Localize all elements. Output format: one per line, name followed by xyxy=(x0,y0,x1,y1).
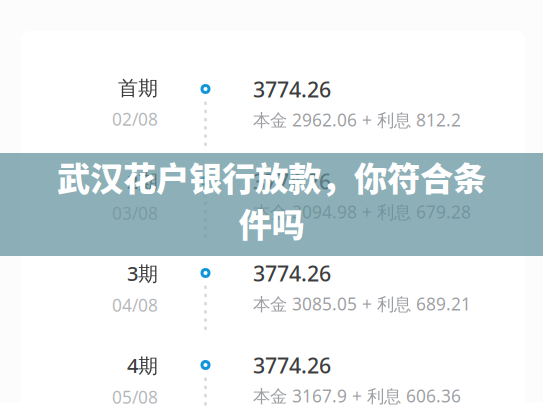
staticText: 03/08 xyxy=(112,202,158,225)
staticText: 2期 xyxy=(127,168,158,195)
button[interactable]: 2期 xyxy=(21,165,525,257)
staticText: 本金 3085.05 + 利息 689.21 xyxy=(253,292,471,315)
staticText: 3期 xyxy=(127,260,158,287)
staticText: 本金 3094.98 + 利息 679.28 xyxy=(253,200,471,223)
staticText: 3774.26 xyxy=(253,75,331,103)
staticText: 04/08 xyxy=(112,294,158,317)
staticText: 05/08 xyxy=(112,386,158,408)
staticText: 首期 xyxy=(118,76,158,101)
staticText: 02/08 xyxy=(112,108,158,131)
staticText: 武汉花户银行放款，你符合条 xyxy=(57,152,486,200)
staticText: 3774.26 xyxy=(253,351,331,379)
button[interactable]: 首期 xyxy=(21,73,525,165)
staticText: 本金 2962.06 + 利息 812.2 xyxy=(253,108,461,131)
staticText: 4期 xyxy=(127,352,158,379)
staticText: 3774.26 xyxy=(253,167,331,195)
button[interactable]: 4期 xyxy=(21,349,525,408)
staticText: 本金 3167.9 + 利息 606.36 xyxy=(253,384,461,407)
button[interactable]: 3期 xyxy=(21,257,525,349)
staticText: 3774.26 xyxy=(253,259,331,287)
staticText: 件吗 xyxy=(238,198,304,247)
